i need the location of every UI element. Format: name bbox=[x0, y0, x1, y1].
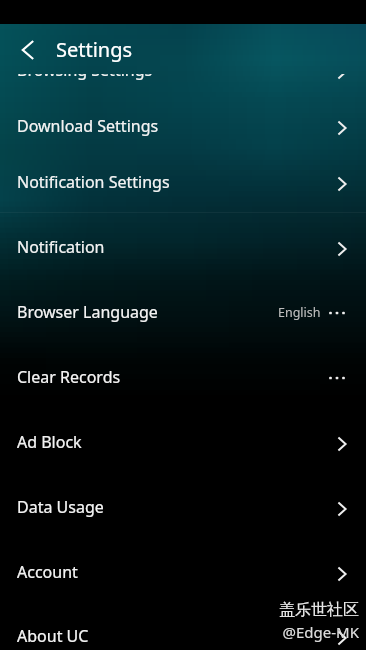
staticText: Browsing Settings bbox=[17, 74, 153, 81]
button[interactable]: Ad Block bbox=[0, 409, 366, 474]
staticText: About UC bbox=[17, 625, 89, 647]
staticText: 盖乐世社区 bbox=[279, 600, 359, 620]
staticText: Download Settings bbox=[17, 115, 159, 137]
staticText: Notification bbox=[17, 236, 105, 258]
staticText: Notification Settings bbox=[17, 171, 170, 193]
staticText: Ad Block bbox=[17, 431, 82, 453]
staticText: Settings bbox=[56, 36, 133, 63]
button[interactable]: Account bbox=[0, 539, 366, 604]
button[interactable]: Clear Records bbox=[0, 344, 366, 409]
button[interactable]: Browsing Settings bbox=[0, 74, 366, 98]
button[interactable]: Download Settings bbox=[0, 98, 366, 154]
staticText: @Edge-MK bbox=[282, 622, 359, 642]
staticText: Data Usage bbox=[17, 496, 104, 518]
button[interactable]: About UC bbox=[0, 603, 366, 650]
staticText: Account bbox=[17, 561, 78, 583]
button[interactable]: Back bbox=[4, 25, 52, 75]
staticText: Clear Records bbox=[17, 366, 121, 388]
staticText: English bbox=[278, 304, 321, 321]
button[interactable]: Notification Settings bbox=[0, 154, 366, 210]
button[interactable]: Data Usage bbox=[0, 474, 366, 539]
button[interactable]: Browser Language bbox=[0, 279, 366, 344]
staticText: Browser Language bbox=[17, 301, 158, 323]
button[interactable]: Notification bbox=[0, 214, 366, 279]
